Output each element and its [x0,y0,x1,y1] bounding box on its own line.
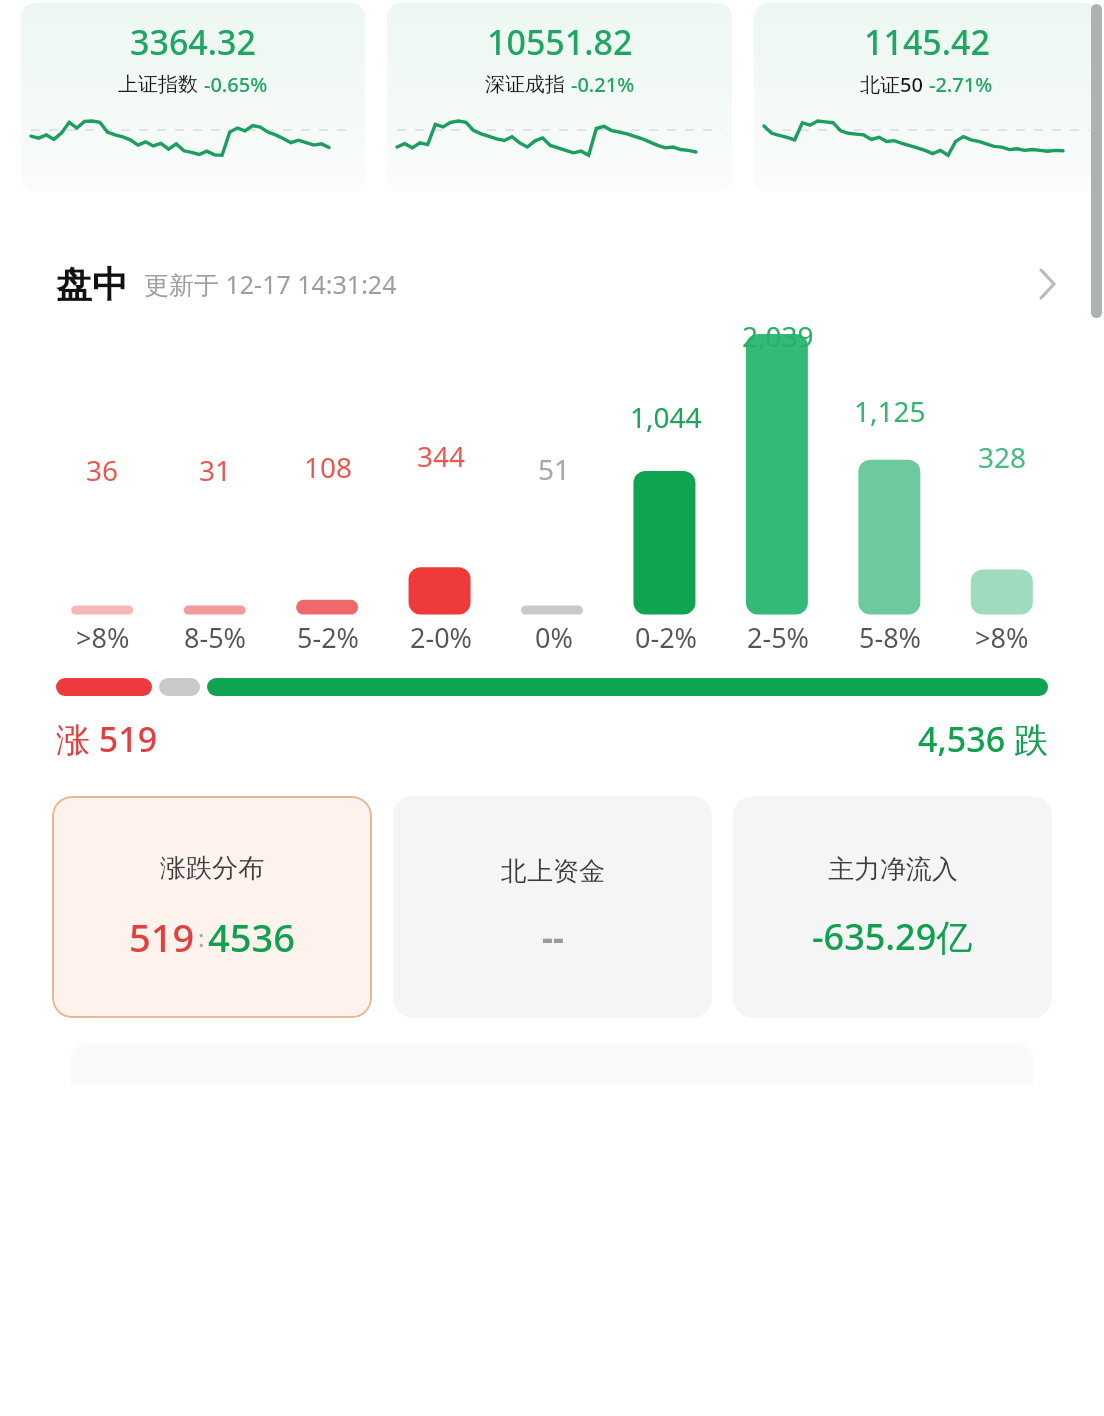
staticText: 1,044 [630,398,702,436]
staticText: 5-8% [859,619,922,656]
staticText: -0.21% [571,71,635,98]
staticText: -- [542,914,564,960]
staticText: 108 [304,448,353,486]
staticText: 519 [129,911,195,963]
button[interactable]: 盘中 [0,254,1104,314]
staticText: 2,039 [742,317,814,355]
staticText: 上证指数 [118,72,198,97]
staticText: 4536 [208,911,295,963]
staticText: 10551.82 [487,19,633,65]
staticText: 4,536 跌 [918,716,1048,762]
button[interactable]: 10551.82 [387,3,732,192]
staticText: : [198,921,205,954]
staticText: 51 [538,450,571,488]
staticText: 深证成指 [485,72,565,97]
staticText: 1,125 [854,392,926,430]
staticText: 344 [417,437,466,475]
button[interactable]: 涨跌分布 [52,796,372,1018]
staticText: 2-0% [410,619,473,656]
staticText: 2-5% [747,619,810,656]
staticText: 涨跌分布 [160,852,264,885]
staticText: 328 [978,438,1027,476]
staticText: 31 [199,451,232,489]
staticText: >8% [76,619,130,656]
staticText: 1145.42 [864,19,990,65]
staticText: -0.65% [204,71,268,98]
staticText: -635.29亿 [812,912,973,961]
staticText: 主力净流入 [828,853,958,886]
staticText: 0% [535,619,573,656]
staticText: 36 [86,451,119,489]
staticText: 北证50 [860,71,923,98]
staticText: 盘中 [56,262,128,307]
button[interactable]: 3364.32 [21,3,365,192]
staticText: 0-2% [635,619,698,656]
staticText: 北上资金 [501,855,605,888]
other: More [1030,267,1064,301]
button[interactable]: 主力净流入 [733,796,1052,1018]
staticText: 8-5% [184,619,247,656]
staticText: 更新于 12-17 14:31:24 [144,267,397,301]
staticText: 涨 519 [56,716,158,762]
staticText: >8% [975,619,1029,656]
button[interactable]: 北上资金 [393,796,712,1018]
staticText: -2.71% [929,71,993,98]
staticText: 5-2% [297,619,360,656]
button[interactable]: 1145.42 [754,3,1099,192]
staticText: 3364.32 [130,19,256,65]
